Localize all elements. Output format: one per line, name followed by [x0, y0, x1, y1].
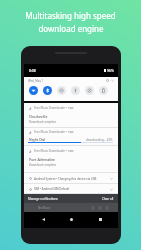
button[interactable]: SIM • Android SIM Default: [24, 184, 118, 194]
staticText: 8:08: [29, 68, 36, 73]
staticText: Multitasking high speed: [25, 10, 116, 21]
staticText: download engine: [38, 23, 104, 34]
button[interactable]: Bluetooth: [43, 86, 52, 95]
staticText: Clear all: [102, 197, 114, 201]
button[interactable]: Back: [33, 212, 53, 227]
button[interactable]: Home: [61, 212, 81, 227]
button[interactable]: Auto-rotate: [85, 86, 94, 95]
staticText: Free Music Downloader • now: [34, 149, 74, 153]
button[interactable]: Flashlight: [71, 86, 80, 95]
staticText: downloading... 42%: [86, 138, 113, 142]
staticText: 96%: [107, 68, 114, 73]
button[interactable]: Free Music Downloader • now: [24, 103, 118, 128]
button[interactable]: Settings: [106, 79, 109, 82]
staticText: Android System • Charging this device vi…: [34, 177, 97, 181]
button[interactable]: Wi-Fi: [29, 86, 38, 95]
button[interactable]: Do not disturb: [57, 86, 66, 95]
staticText: Pure Adrenaline: [29, 157, 55, 162]
staticText: Manage notifications: [28, 197, 58, 201]
button[interactable]: Android System • Charging this device vi…: [24, 173, 118, 184]
button[interactable]: Free Music Downloader • now: [24, 146, 118, 173]
staticText: SIM • Android SIM Default: [34, 187, 70, 191]
button[interactable]: Battery saver: [99, 86, 108, 95]
staticText: Free Music Downloader • now: [34, 106, 74, 110]
staticText: Download complete: [29, 120, 57, 124]
staticText: No Music: [38, 206, 51, 210]
staticText: Night Owl: [29, 137, 46, 142]
button[interactable]: Manage notifications: [28, 197, 58, 201]
staticText: Download complete: [29, 163, 57, 167]
staticText: Chuckeville: [29, 114, 48, 119]
button[interactable]: Free Music Downloader • now: [24, 128, 118, 146]
staticText: Wed, May 1: [28, 79, 44, 83]
button[interactable]: Clear all: [102, 197, 114, 201]
staticText: Free Music Downloader • now: [34, 130, 74, 134]
button[interactable]: Recent apps: [90, 212, 110, 227]
button[interactable]: Expand: [111, 79, 114, 82]
